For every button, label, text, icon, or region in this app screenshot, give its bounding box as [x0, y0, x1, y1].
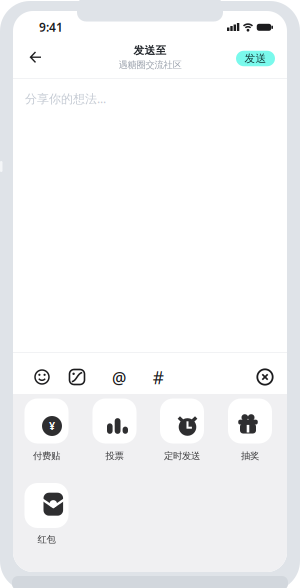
button[interactable]: 发送	[236, 51, 275, 66]
staticText: 抽奖	[241, 450, 259, 462]
button[interactable]: Back	[22, 44, 48, 70]
button[interactable]: 付费贴	[24, 398, 68, 443]
button[interactable]: Emoji	[29, 364, 55, 390]
button[interactable]: 抽奖	[228, 398, 272, 443]
staticText: 定时发送	[164, 450, 200, 462]
staticText: #	[153, 366, 164, 389]
staticText: 红包	[37, 534, 55, 545]
button[interactable]: Close	[252, 364, 278, 390]
button[interactable]: 投票	[92, 398, 136, 443]
staticText: 发送至	[133, 44, 166, 57]
staticText: 分享你的想法...	[25, 90, 106, 106]
staticText: 9:41	[39, 19, 63, 35]
button[interactable]: 定时发送	[160, 398, 204, 443]
button[interactable]: Photo	[64, 364, 90, 390]
button[interactable]: Mention	[106, 365, 132, 391]
button[interactable]: Topic	[145, 364, 171, 390]
button[interactable]: 红包	[24, 483, 68, 528]
staticText: 付费贴	[33, 450, 60, 462]
staticText: 遇糖圈交流社区	[118, 59, 181, 71]
staticText: 发送	[244, 52, 266, 65]
staticText: ¥	[49, 419, 55, 433]
staticText: @	[112, 367, 126, 388]
staticText: 投票	[105, 450, 123, 462]
